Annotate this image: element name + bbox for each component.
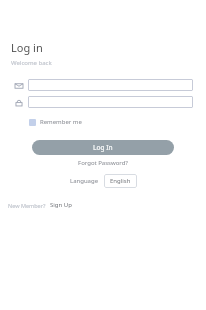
staticText: English — [110, 177, 131, 185]
button[interactable] — [28, 79, 193, 91]
staticText: Log In — [93, 143, 113, 152]
staticText: Language — [70, 177, 99, 185]
button[interactable]: Log In — [32, 140, 174, 155]
button[interactable]: Remember me — [28, 116, 83, 128]
button[interactable]: Sign Up — [49, 200, 73, 210]
button[interactable]: Forgot Password? — [75, 158, 131, 168]
button[interactable] — [28, 96, 193, 108]
button[interactable]: English — [104, 174, 137, 188]
staticText: Welcome back — [11, 59, 52, 67]
staticText: New Member? — [8, 202, 46, 209]
staticText: Log in — [11, 40, 43, 55]
other: Password — [13, 97, 24, 108]
staticText: Remember me — [40, 118, 82, 126]
other: Email — [13, 80, 24, 91]
